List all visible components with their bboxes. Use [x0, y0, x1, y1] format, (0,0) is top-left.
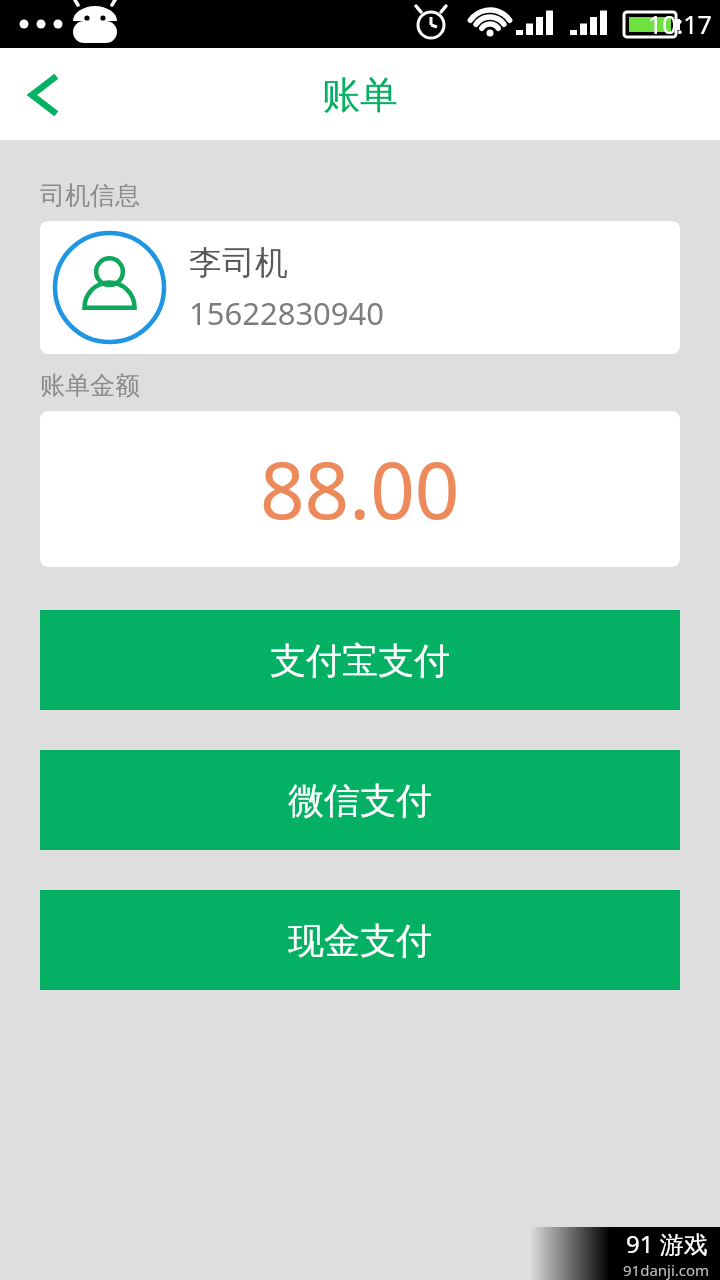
staticText: 10:17	[648, 7, 712, 41]
staticText: 91 游戏	[626, 1227, 708, 1260]
staticText: 司机信息	[40, 180, 140, 211]
button[interactable]: 李司机	[40, 221, 680, 354]
staticText: 支付宝支付	[270, 638, 450, 683]
staticText: 账单金额	[40, 370, 140, 401]
button[interactable]: Back	[0, 53, 84, 137]
staticText: 李司机	[189, 242, 288, 284]
staticText: 91danji.com	[623, 1260, 710, 1280]
staticText: 微信支付	[288, 778, 432, 823]
staticText: 账单	[322, 71, 398, 119]
button[interactable]: 支付宝支付	[40, 610, 680, 710]
button[interactable]: 现金支付	[40, 890, 680, 990]
staticText: 15622830940	[189, 292, 385, 334]
button[interactable]: 88.00	[40, 411, 680, 567]
staticText: 现金支付	[288, 918, 432, 963]
staticText: 88.00	[260, 436, 460, 542]
button[interactable]: 微信支付	[40, 750, 680, 850]
